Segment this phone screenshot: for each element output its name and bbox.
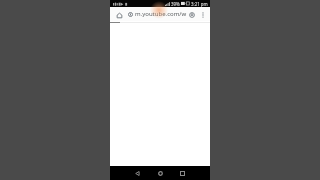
button[interactable]: Home <box>153 166 167 180</box>
staticText: m.youtube.com/w <box>135 10 187 18</box>
button[interactable]: Search or type web address <box>128 7 187 21</box>
button[interactable]: Recents <box>175 166 189 180</box>
button[interactable]: Home <box>114 9 124 19</box>
staticText: 3:21 pm <box>191 1 208 7</box>
staticText: 39% <box>171 1 180 7</box>
button[interactable]: More options <box>198 10 207 19</box>
button[interactable]: Back <box>130 166 144 180</box>
button[interactable]: Account <box>187 9 198 20</box>
